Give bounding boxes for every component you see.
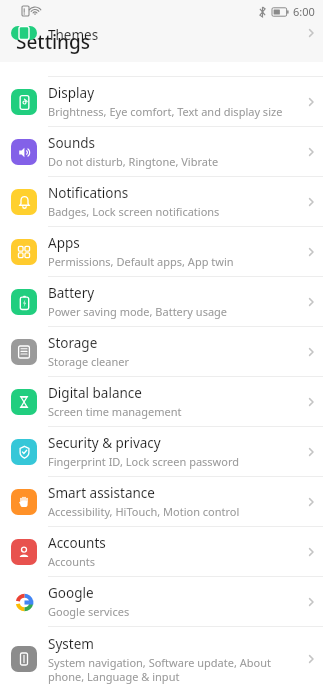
staticText: Sounds — [48, 134, 96, 152]
other: Open Storage — [299, 340, 323, 364]
staticText: Security & privacy — [48, 434, 161, 452]
staticText: System — [48, 635, 94, 653]
staticText: Accounts — [48, 554, 96, 569]
button[interactable]: Battery — [0, 277, 323, 326]
staticText: Permissions, Default apps, App twin — [48, 254, 234, 269]
other: Open Digital balance — [299, 390, 323, 414]
staticText: 6:00 — [293, 4, 315, 19]
button[interactable]: Apps — [0, 227, 323, 276]
other: Open Themes — [299, 26, 323, 40]
staticText: Apps — [48, 234, 80, 252]
other: Open Battery — [299, 290, 323, 314]
button[interactable]: Storage — [0, 327, 323, 376]
button[interactable]: Smart assistance — [0, 477, 323, 526]
staticText: Google services — [48, 604, 130, 619]
staticText: Power saving mode, Battery usage — [48, 304, 228, 319]
staticText: Brightness, Eye comfort, Text and displa… — [48, 104, 283, 119]
staticText: Notifications — [48, 184, 129, 202]
other: Open Google — [299, 590, 323, 614]
staticText: Digital balance — [48, 384, 142, 402]
staticText: Themes — [48, 26, 99, 40]
button[interactable]: Google — [0, 577, 323, 626]
staticText: Storage cleaner — [48, 354, 130, 369]
staticText: Accounts — [48, 534, 106, 552]
button[interactable]: Security & privacy — [0, 427, 323, 476]
button[interactable]: Display — [0, 77, 323, 126]
staticText: Google — [48, 584, 94, 602]
button[interactable]: Digital balance — [0, 377, 323, 426]
staticText: Screen time management — [48, 404, 182, 419]
staticText: Settings — [16, 29, 90, 55]
staticText: Do not disturb, Ringtone, Vibrate — [48, 154, 219, 169]
other: Open Sounds — [299, 140, 323, 164]
button[interactable]: Accounts — [0, 527, 323, 576]
other: Open System — [299, 647, 323, 671]
button[interactable]: Notifications — [0, 177, 323, 226]
staticText: Accessibility, HiTouch, Motion control — [48, 504, 240, 519]
other: Open Display — [299, 90, 323, 114]
staticText: Smart assistance — [48, 484, 155, 502]
staticText: Battery — [48, 284, 95, 302]
staticText: System navigation, Software update, Abou… — [48, 655, 293, 684]
other: Open Security & privacy — [299, 440, 323, 464]
other: Open Accounts — [299, 540, 323, 564]
other: Open Smart assistance — [299, 490, 323, 514]
button[interactable]: Sounds — [0, 127, 323, 176]
staticText: Display — [48, 84, 95, 102]
staticText: Badges, Lock screen notifications — [48, 204, 220, 219]
staticText: Storage — [48, 334, 98, 352]
other: Open Notifications — [299, 190, 323, 214]
other: Open Apps — [299, 240, 323, 264]
staticText: Fingerprint ID, Lock screen password — [48, 454, 239, 469]
button[interactable]: System — [0, 627, 323, 691]
